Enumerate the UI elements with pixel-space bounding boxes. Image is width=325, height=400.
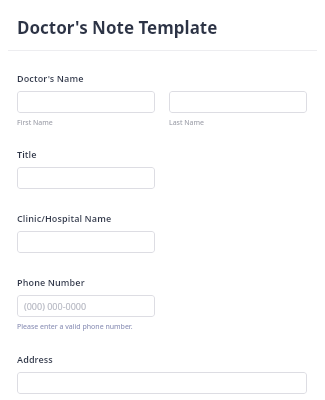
- staticText: Please enter a valid phone number.: [17, 322, 133, 332]
- staticText: Title: [17, 148, 37, 160]
- button[interactable]: [17, 372, 307, 394]
- button[interactable]: [17, 91, 155, 113]
- staticText: (000) 000-0000: [24, 300, 87, 312]
- button[interactable]: (000) 000-0000: [17, 295, 155, 317]
- staticText: Last Name: [169, 118, 205, 128]
- staticText: Doctor's Note Template: [17, 16, 218, 39]
- button[interactable]: [17, 167, 155, 189]
- staticText: Phone Number: [17, 276, 85, 288]
- staticText: Address: [17, 353, 53, 365]
- staticText: First Name: [17, 118, 53, 128]
- button[interactable]: [17, 231, 155, 253]
- button[interactable]: [169, 91, 307, 113]
- staticText: Clinic/Hospital Name: [17, 212, 112, 224]
- staticText: Doctor's Name: [17, 72, 84, 84]
